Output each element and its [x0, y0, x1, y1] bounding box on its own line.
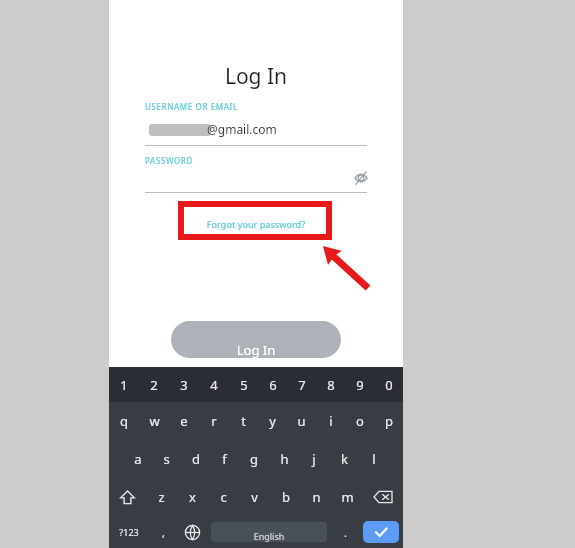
- staticText: c: [220, 488, 227, 506]
- button[interactable]: Log In: [171, 321, 341, 358]
- button[interactable]: r: [199, 402, 229, 440]
- button[interactable]: Enter: [363, 521, 399, 543]
- button[interactable]: m: [332, 478, 363, 516]
- staticText: p: [385, 412, 393, 430]
- button[interactable]: 6: [258, 367, 287, 402]
- button[interactable]: 1: [109, 367, 139, 402]
- button[interactable]: Change language: [177, 516, 207, 548]
- button[interactable]: h: [269, 440, 299, 478]
- staticText: 8: [327, 376, 335, 394]
- button[interactable]: q: [109, 402, 139, 440]
- button[interactable]: Shift: [109, 478, 145, 516]
- button[interactable]: 5: [229, 367, 258, 402]
- staticText: j: [312, 450, 316, 468]
- staticText: PASSWORD: [145, 155, 305, 166]
- button[interactable]: v: [239, 478, 270, 516]
- staticText: t: [241, 412, 246, 430]
- staticText: h: [280, 450, 289, 468]
- button[interactable]: o: [345, 402, 374, 440]
- staticText: s: [163, 450, 170, 468]
- staticText: ,: [162, 525, 165, 540]
- button[interactable]: 8: [316, 367, 345, 402]
- staticText: u: [297, 412, 306, 430]
- staticText: @gmail.com: [207, 121, 357, 137]
- staticText: USERNAME OR EMAIL: [145, 101, 365, 112]
- staticText: .: [344, 525, 347, 540]
- button[interactable]: Forgot your password?: [184, 209, 328, 231]
- button[interactable]: ?123: [109, 516, 149, 548]
- staticText: 5: [240, 376, 248, 394]
- button[interactable]: g: [239, 440, 269, 478]
- button[interactable]: x: [177, 478, 208, 516]
- button[interactable]: e: [169, 402, 199, 440]
- staticText: q: [120, 412, 128, 430]
- button[interactable]: [145, 168, 367, 192]
- staticText: Forgot your password?: [184, 218, 328, 230]
- button[interactable]: Show password: [349, 166, 373, 190]
- staticText: y: [269, 412, 276, 430]
- button[interactable]: 3: [169, 367, 199, 402]
- staticText: n: [312, 488, 321, 506]
- staticText: 7: [298, 376, 306, 394]
- button[interactable]: w: [139, 402, 169, 440]
- staticText: 0: [385, 376, 393, 394]
- staticText: g: [250, 450, 258, 468]
- button[interactable]: l: [359, 440, 389, 478]
- button[interactable]: z: [145, 478, 177, 516]
- staticText: f: [222, 450, 227, 468]
- button[interactable]: d: [181, 440, 210, 478]
- staticText: b: [282, 488, 290, 506]
- staticText: d: [192, 450, 200, 468]
- button[interactable]: English: [211, 522, 327, 542]
- staticText: i: [329, 412, 333, 430]
- staticText: ?123: [119, 526, 139, 538]
- button[interactable]: i: [316, 402, 345, 440]
- staticText: 9: [356, 376, 364, 394]
- staticText: x: [189, 488, 196, 506]
- button[interactable]: j: [299, 440, 329, 478]
- button[interactable]: s: [152, 440, 181, 478]
- staticText: k: [341, 450, 348, 468]
- button[interactable]: 2: [139, 367, 169, 402]
- staticText: z: [158, 488, 165, 506]
- staticText: w: [149, 412, 160, 430]
- button[interactable]: Backspace: [363, 478, 403, 516]
- staticText: a: [134, 450, 142, 468]
- button[interactable]: 4: [199, 367, 229, 402]
- staticText: 3: [180, 376, 188, 394]
- staticText: o: [356, 412, 364, 430]
- staticText: English: [211, 530, 327, 542]
- button[interactable]: p: [374, 402, 403, 440]
- button[interactable]: b: [270, 478, 301, 516]
- staticText: 6: [269, 376, 277, 394]
- staticText: 4: [210, 376, 218, 394]
- staticText: 1: [120, 376, 128, 394]
- button[interactable]: 9: [345, 367, 374, 402]
- button[interactable]: a: [123, 440, 152, 478]
- button[interactable]: y: [258, 402, 287, 440]
- button[interactable]: .: [331, 516, 359, 548]
- button[interactable]: n: [301, 478, 332, 516]
- button[interactable]: u: [287, 402, 316, 440]
- button[interactable]: f: [210, 440, 239, 478]
- button[interactable]: c: [208, 478, 239, 516]
- button[interactable]: 0: [374, 367, 403, 402]
- button[interactable]: ,: [149, 516, 177, 548]
- button[interactable]: k: [329, 440, 359, 478]
- staticText: e: [180, 412, 188, 430]
- button[interactable]: t: [229, 402, 258, 440]
- staticText: Log In: [171, 341, 341, 358]
- staticText: Log In: [109, 62, 403, 91]
- button[interactable]: @gmail.com: [145, 120, 367, 142]
- button[interactable]: 7: [287, 367, 316, 402]
- staticText: v: [251, 488, 258, 506]
- staticText: l: [372, 450, 376, 468]
- staticText: m: [341, 488, 354, 506]
- staticText: 2: [150, 376, 158, 394]
- staticText: r: [211, 412, 217, 430]
